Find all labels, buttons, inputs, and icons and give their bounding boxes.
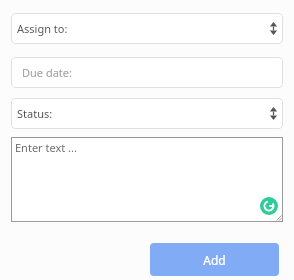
staticText: Assign to: (17, 21, 68, 36)
staticText: Status: (17, 106, 53, 121)
button[interactable]: Enter text ... (11, 137, 283, 222)
staticText: Enter text ... (15, 140, 77, 155)
button[interactable]: Status selector (11, 98, 283, 129)
other: Grammarly (260, 197, 278, 215)
staticText: Due date: (22, 65, 72, 80)
button[interactable]: Due date field (11, 57, 283, 88)
button[interactable]: Assign to selector (11, 13, 283, 44)
button[interactable]: Add (150, 243, 279, 276)
staticText: Add (203, 252, 226, 268)
